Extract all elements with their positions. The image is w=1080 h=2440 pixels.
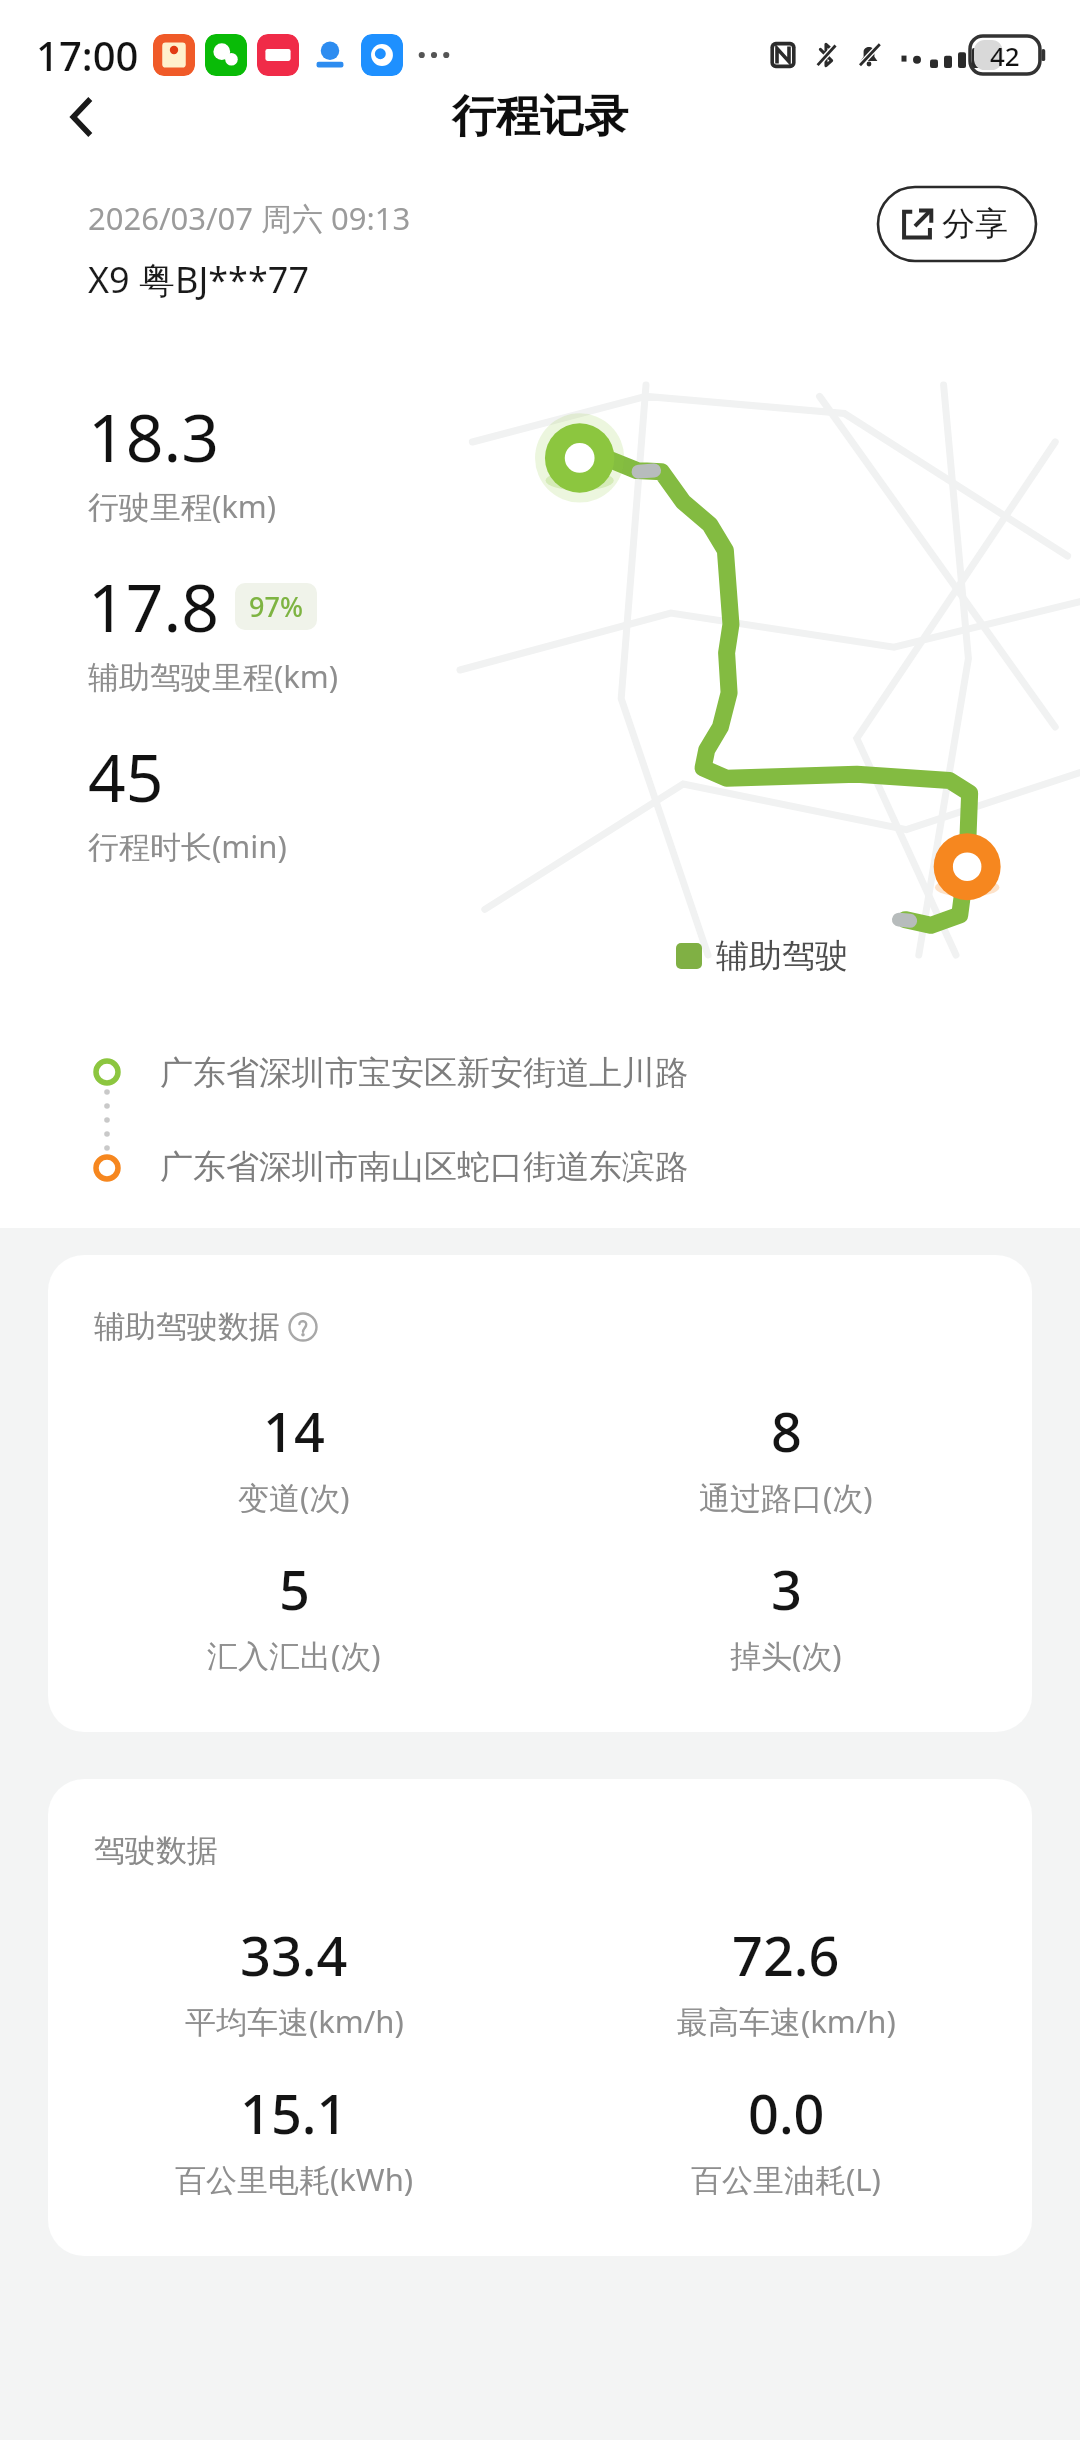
staticText: 33.4 [240, 1918, 348, 1992]
staticText: 广东省深圳市南山区蛇口街道东滨路 [160, 1146, 688, 1188]
staticText: 18.3 [88, 391, 219, 481]
staticText: 辅助驾驶里程(km) [88, 655, 339, 697]
staticText: 行程时长(min) [88, 825, 287, 867]
staticText: 驾驶数据 [94, 1831, 218, 1870]
staticText: 广东省深圳市宝安区新安街道上川路 [160, 1052, 688, 1094]
button[interactable]: 返回 [40, 75, 124, 159]
staticText: 97% [249, 588, 303, 625]
staticText: 通过路口(次) [699, 1476, 873, 1518]
staticText: 42 [990, 38, 1020, 73]
staticText: X9 粤BJ***77 [88, 255, 309, 304]
staticText: 分享 [942, 203, 1008, 245]
button[interactable]: 分享 [872, 187, 1036, 261]
staticText: 17:00 [36, 28, 139, 82]
staticText: 变道(次) [238, 1476, 350, 1518]
staticText: 45 [88, 731, 164, 821]
staticText: 3 [771, 1552, 802, 1626]
button[interactable]: 驾驶数据 [48, 1779, 1032, 2256]
staticText: 行程记录 [452, 89, 628, 144]
staticText: 5 [279, 1552, 310, 1626]
staticText: 14 [263, 1394, 325, 1468]
staticText: 辅助驾驶数据 [94, 1307, 280, 1346]
staticText: 百公里油耗(L) [691, 2158, 881, 2200]
staticText: 8 [771, 1394, 802, 1468]
staticText: 行驶里程(km) [88, 485, 277, 527]
staticText: 72.6 [732, 1918, 840, 1992]
staticText: 0.0 [748, 2076, 825, 2150]
staticText: 辅助驾驶 [716, 935, 848, 977]
staticText: 17.8 [88, 561, 219, 651]
staticText: 2026/03/07 周六 09:13 [88, 197, 411, 239]
staticText: 掉头(次) [730, 1634, 842, 1676]
staticText: 15.1 [240, 2076, 348, 2150]
staticText: 最高车速(km/h) [677, 2000, 896, 2042]
staticText: 百公里电耗(kWh) [175, 2158, 414, 2200]
staticText: 平均车速(km/h) [185, 2000, 404, 2042]
button[interactable]: 辅助驾驶数据 [48, 1255, 1032, 1732]
staticText: 汇入汇出(次) [207, 1634, 381, 1676]
